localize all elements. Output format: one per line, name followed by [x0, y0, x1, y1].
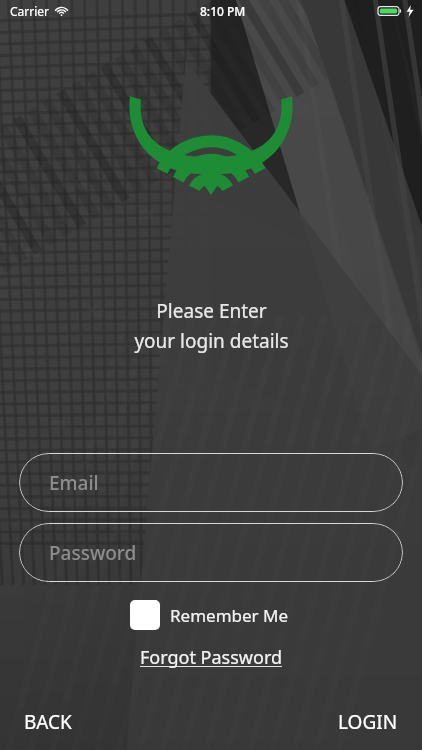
staticText: Forgot Password — [140, 645, 283, 670]
staticText: Password — [49, 540, 137, 566]
staticText: Remember Me — [170, 604, 289, 627]
button[interactable]: BACK — [0, 699, 96, 745]
staticText: Please Enter — [156, 298, 267, 324]
staticText: your login details — [134, 328, 289, 354]
staticText: Email — [49, 470, 99, 496]
button[interactable]: Remember Me — [130, 600, 289, 630]
button[interactable]: Email — [19, 453, 403, 512]
staticText: 8:10 PM — [200, 3, 246, 19]
button[interactable]: Forgot Password — [136, 643, 287, 672]
staticText: BACK — [24, 709, 72, 735]
button[interactable]: Password — [19, 523, 403, 582]
staticText: LOGIN — [338, 709, 398, 735]
button[interactable]: LOGIN — [314, 699, 422, 745]
staticText: Carrier — [10, 3, 50, 19]
